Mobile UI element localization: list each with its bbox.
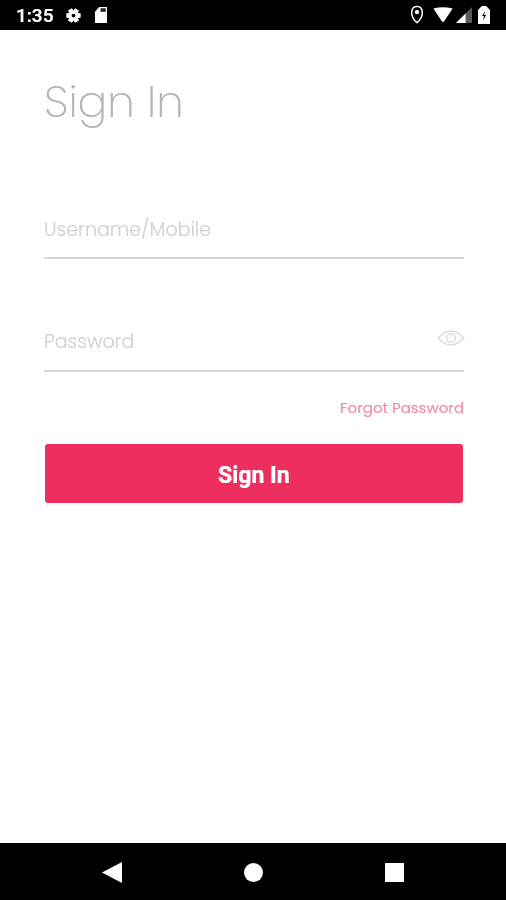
button[interactable]: Home (229, 848, 277, 896)
button[interactable]: Show password (436, 323, 466, 353)
staticText: Username/Mobile (44, 216, 211, 243)
staticText: Sign In (44, 71, 184, 133)
button[interactable]: Sign In (45, 444, 463, 503)
button[interactable]: Back (88, 848, 136, 896)
button[interactable]: Forgot Password (340, 397, 465, 418)
button[interactable]: Username/Mobile (44, 208, 464, 258)
button[interactable]: Recent apps (370, 848, 418, 896)
staticText: Password (44, 328, 135, 355)
staticText: 1:35 (16, 4, 54, 26)
staticText: Sign In (218, 462, 290, 489)
button[interactable]: Password (44, 320, 464, 370)
